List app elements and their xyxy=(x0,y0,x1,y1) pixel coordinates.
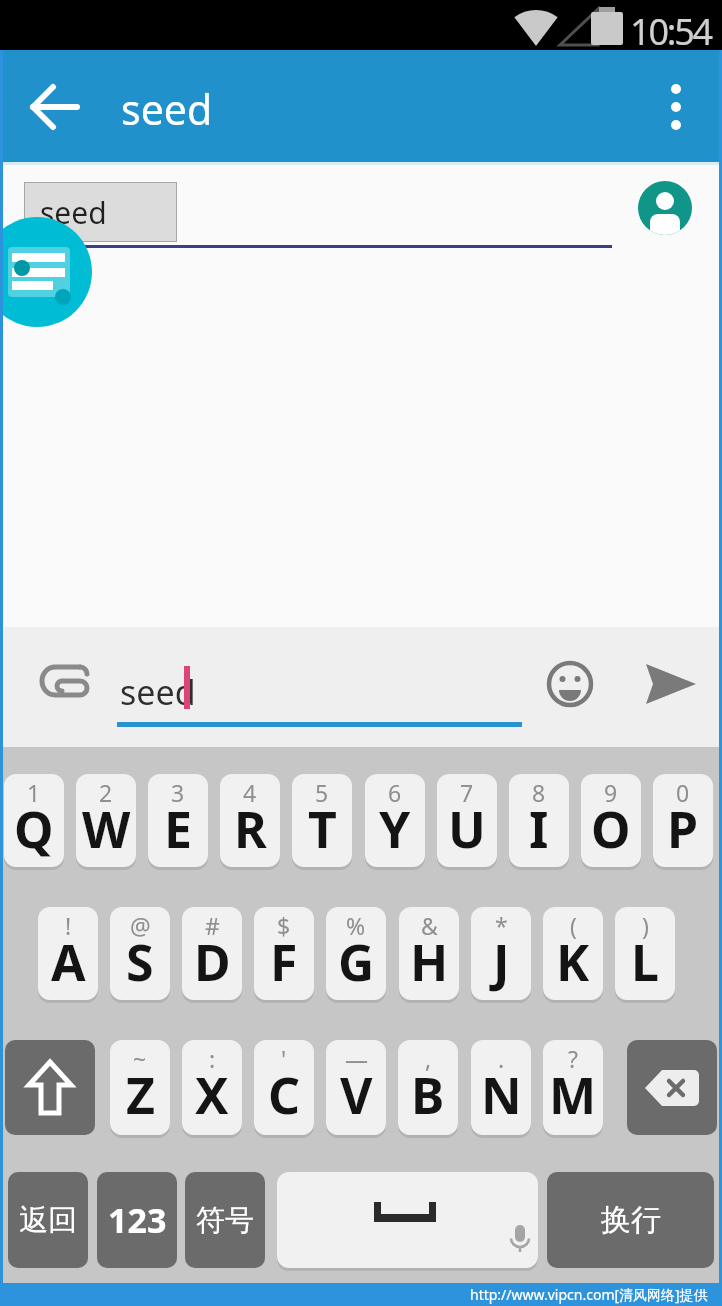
staticText: 3 xyxy=(171,777,185,808)
staticText: 2 xyxy=(99,777,113,808)
button[interactable]: ' xyxy=(254,1040,314,1135)
button[interactable]: , xyxy=(398,1040,458,1135)
button[interactable]: 换行 xyxy=(547,1172,714,1268)
staticText: I xyxy=(529,795,549,863)
staticText: * xyxy=(495,910,508,941)
staticText: seed xyxy=(40,192,107,233)
button[interactable]: 5 xyxy=(292,774,352,867)
staticText: http://www.vipcn.com[清风网络]提供 xyxy=(470,1285,708,1304)
button[interactable]: ! xyxy=(38,907,98,1000)
button[interactable]: # xyxy=(182,907,242,1000)
button[interactable]: 7 xyxy=(437,774,497,867)
staticText: 8 xyxy=(532,777,546,808)
button[interactable]: . xyxy=(471,1040,531,1135)
button[interactable] xyxy=(25,70,89,142)
staticText: Z xyxy=(126,1061,155,1129)
staticText: seed xyxy=(121,81,213,137)
staticText: A xyxy=(51,928,86,996)
staticText: 10:54 xyxy=(630,7,712,56)
button[interactable]: 2 xyxy=(76,774,136,867)
button[interactable] xyxy=(277,1172,538,1268)
button[interactable]: 返回 xyxy=(8,1172,88,1268)
staticText: J xyxy=(493,928,510,996)
button[interactable]: * xyxy=(471,907,531,1000)
staticText: ~ xyxy=(133,1043,147,1074)
button[interactable]: ~ xyxy=(110,1040,170,1135)
button[interactable]: ( xyxy=(543,907,603,1000)
staticText: Y xyxy=(379,795,411,863)
staticText: 6 xyxy=(388,777,402,808)
staticText: C xyxy=(268,1061,301,1129)
button[interactable]: @ xyxy=(110,907,170,1000)
button[interactable]: $ xyxy=(254,907,314,1000)
button[interactable]: 123 xyxy=(97,1172,177,1268)
staticText: 符号 xyxy=(196,1202,254,1239)
staticText: F xyxy=(270,928,298,996)
staticText: W xyxy=(82,795,131,863)
staticText: T xyxy=(308,795,337,863)
button[interactable]: & xyxy=(399,907,459,1000)
button[interactable]: 9 xyxy=(581,774,641,867)
staticText: seed xyxy=(120,669,196,715)
staticText: ) xyxy=(642,910,649,941)
staticText: 5 xyxy=(315,777,329,808)
button[interactable]: ) xyxy=(615,907,675,1000)
staticText: P xyxy=(667,795,699,863)
staticText: 0 xyxy=(676,777,690,808)
staticText: H xyxy=(410,928,449,996)
button[interactable] xyxy=(652,70,700,142)
button[interactable]: 4 xyxy=(220,774,280,867)
staticText: L xyxy=(631,928,659,996)
staticText: ' xyxy=(281,1043,287,1074)
button[interactable]: 1 xyxy=(4,774,64,867)
staticText: # xyxy=(205,910,220,941)
staticText: ― xyxy=(345,1043,368,1074)
staticText: : xyxy=(209,1043,216,1074)
staticText: . xyxy=(498,1043,505,1074)
button[interactable]: 0 xyxy=(653,774,713,867)
staticText: R xyxy=(234,795,267,863)
staticText: 7 xyxy=(460,777,474,808)
button[interactable] xyxy=(543,657,597,711)
staticText: M xyxy=(549,1061,597,1129)
button[interactable]: ? xyxy=(543,1040,603,1135)
button[interactable] xyxy=(0,217,92,327)
button[interactable] xyxy=(636,654,706,714)
button[interactable] xyxy=(40,664,96,700)
staticText: 换行 xyxy=(601,1201,661,1239)
staticText: 返回 xyxy=(19,1202,77,1239)
staticText: $ xyxy=(277,910,291,941)
staticText: , xyxy=(425,1043,432,1074)
staticText: O xyxy=(591,795,631,863)
button[interactable]: 6 xyxy=(365,774,425,867)
staticText: 4 xyxy=(243,777,257,808)
staticText: S xyxy=(126,928,154,996)
staticText: % xyxy=(346,910,366,941)
staticText: E xyxy=(164,795,192,863)
staticText: 9 xyxy=(604,777,618,808)
staticText: ? xyxy=(568,1043,578,1074)
button[interactable]: 3 xyxy=(148,774,208,867)
staticText: 123 xyxy=(108,1197,167,1243)
staticText: X xyxy=(195,1061,229,1129)
button[interactable]: ― xyxy=(326,1040,386,1135)
staticText: Q xyxy=(14,795,54,863)
button[interactable]: 符号 xyxy=(185,1172,265,1268)
button[interactable]: : xyxy=(182,1040,242,1135)
staticText: U xyxy=(448,795,486,863)
staticText: B xyxy=(411,1061,445,1129)
button[interactable] xyxy=(627,1040,717,1135)
staticText: G xyxy=(338,928,375,996)
staticText: ! xyxy=(65,910,72,941)
button[interactable]: % xyxy=(326,907,386,1000)
staticText: K xyxy=(556,928,590,996)
staticText: 1 xyxy=(27,777,41,808)
staticText: & xyxy=(421,910,438,941)
button[interactable]: seed xyxy=(24,182,177,242)
staticText: D xyxy=(194,928,231,996)
staticText: N xyxy=(481,1061,522,1129)
button[interactable] xyxy=(638,181,692,235)
button[interactable]: 8 xyxy=(509,774,569,867)
staticText: @ xyxy=(130,910,151,941)
button[interactable] xyxy=(5,1040,95,1135)
